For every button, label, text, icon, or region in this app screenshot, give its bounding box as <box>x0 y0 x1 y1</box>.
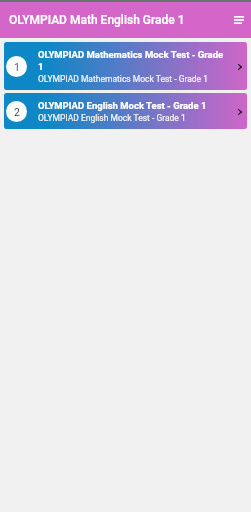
staticText: OLYMPIAD English Mock Test - Grade 1 <box>38 113 186 123</box>
button[interactable]: 1 <box>4 42 247 90</box>
button[interactable]: Sort <box>226 2 251 38</box>
staticText: 1 <box>14 61 20 73</box>
staticText: OLYMPIAD English Mock Test - Grade 1 <box>38 100 207 111</box>
staticText: OLYMPIAD Math English Grade 1 <box>9 13 226 27</box>
button[interactable]: 2 <box>4 93 247 129</box>
staticText: OLYMPIAD Mathematics Mock Test - Grade 1 <box>38 74 209 84</box>
button[interactable]: Open test <box>236 63 244 71</box>
button[interactable]: Open test <box>236 108 244 116</box>
staticText: OLYMPIAD Mathematics Mock Test - Grade 1 <box>38 49 229 72</box>
staticText: 2 <box>14 106 20 118</box>
